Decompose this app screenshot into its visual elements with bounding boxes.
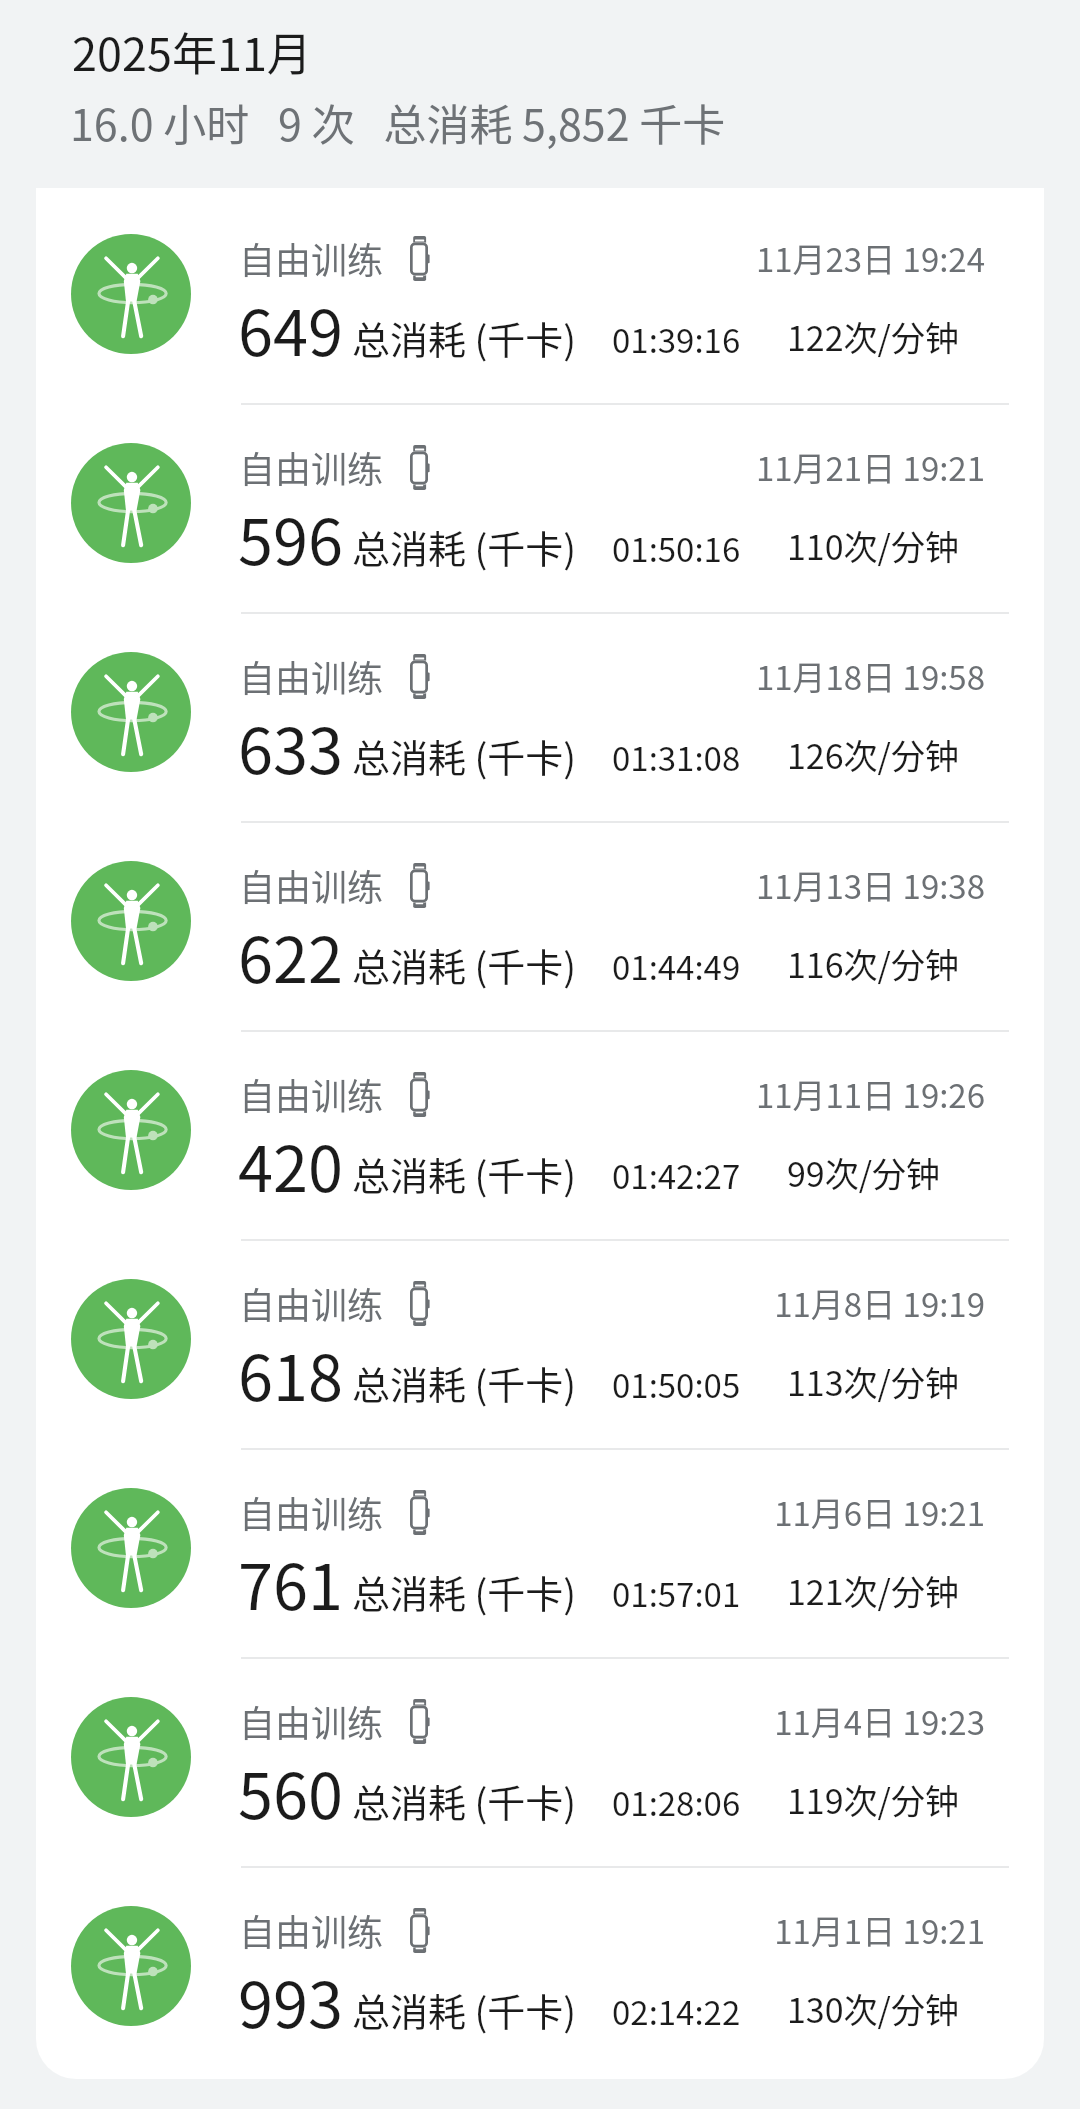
staticText: 01:50:16	[612, 524, 741, 572]
staticText: 总消耗 (千卡)	[352, 1773, 577, 1828]
staticText: 618	[238, 1328, 343, 1419]
staticText: 11月11日 19:26	[604, 1070, 985, 1118]
staticText: 560	[238, 1746, 343, 1837]
staticText: 01:28:06	[612, 1778, 741, 1826]
staticText: 126次/分钟	[787, 730, 959, 779]
staticText: 总消耗 (千卡)	[352, 1564, 577, 1619]
button[interactable]: 自由训练	[36, 606, 1044, 815]
staticText: 02:14:22	[612, 1987, 741, 2035]
staticText: 11月6日 19:21	[604, 1488, 985, 1536]
staticText: 01:31:08	[612, 733, 741, 781]
staticText: 自由训练	[239, 859, 384, 911]
staticText: 总消耗 (千卡)	[352, 1146, 577, 1201]
staticText: 11月23日 19:24	[604, 234, 985, 282]
staticText: 761	[238, 1537, 343, 1628]
staticText: 总消耗 (千卡)	[352, 728, 577, 783]
staticText: 总消耗 (千卡)	[352, 1355, 577, 1410]
staticText: 993	[238, 1955, 343, 2046]
staticText: 01:57:01	[612, 1569, 741, 1617]
staticText: 11月21日 19:21	[604, 443, 985, 491]
staticText: 总消耗 (千卡)	[352, 519, 577, 574]
staticText: 自由训练	[239, 232, 384, 284]
other: Wearable device	[410, 1699, 431, 1745]
button[interactable]: 自由训练	[36, 1442, 1044, 1651]
staticText: 596	[238, 492, 343, 583]
staticText: 633	[238, 701, 343, 792]
staticText: 自由训练	[239, 1904, 384, 1956]
staticText: 自由训练	[239, 1068, 384, 1120]
staticText: 2025年11月	[72, 19, 312, 84]
staticText: 11月8日 19:19	[604, 1279, 985, 1327]
button[interactable]: 自由训练	[36, 1860, 1044, 2069]
other: Wearable device	[410, 1490, 431, 1536]
other: Wearable device	[410, 1281, 431, 1327]
staticText: 总消耗 (千卡)	[352, 1982, 577, 2037]
other: Wearable device	[410, 236, 431, 282]
button[interactable]: 自由训练	[36, 397, 1044, 606]
staticText: 总消耗 (千卡)	[352, 937, 577, 992]
staticText: 11月4日 19:23	[604, 1697, 985, 1745]
staticText: 11月13日 19:38	[604, 861, 985, 909]
staticText: 11月1日 19:21	[604, 1906, 985, 1954]
staticText: 自由训练	[239, 1277, 384, 1329]
other: Wearable device	[410, 1908, 431, 1954]
other: Wearable device	[410, 863, 431, 909]
other: Wearable device	[410, 654, 431, 700]
staticText: 119次/分钟	[787, 1775, 959, 1824]
button[interactable]: 自由训练	[36, 1651, 1044, 1860]
staticText: 130次/分钟	[787, 1984, 959, 2033]
staticText: 01:39:16	[612, 315, 741, 363]
staticText: 11月18日 19:58	[604, 652, 985, 700]
staticText: 622	[238, 910, 343, 1001]
staticText: 116次/分钟	[787, 939, 959, 988]
staticText: 113次/分钟	[787, 1357, 959, 1406]
staticText: 01:44:49	[612, 942, 741, 990]
button[interactable]: 自由训练	[36, 1024, 1044, 1233]
staticText: 自由训练	[239, 1695, 384, 1747]
button[interactable]: 自由训练	[36, 188, 1044, 397]
staticText: 自由训练	[239, 650, 384, 702]
staticText: 总消耗 (千卡)	[352, 310, 577, 365]
button[interactable]: 自由训练	[36, 815, 1044, 1024]
staticText: 121次/分钟	[787, 1566, 959, 1615]
staticText: 420	[238, 1119, 343, 1210]
staticText: 01:42:27	[612, 1151, 741, 1199]
staticText: 01:50:05	[612, 1360, 741, 1408]
staticText: 自由训练	[239, 441, 384, 493]
staticText: 649	[238, 283, 343, 374]
staticText: 110次/分钟	[787, 521, 959, 570]
staticText: 99次/分钟	[787, 1148, 941, 1197]
staticText: 自由训练	[239, 1486, 384, 1538]
other: Wearable device	[410, 445, 431, 491]
button[interactable]: 自由训练	[36, 1233, 1044, 1442]
other: Wearable device	[410, 1072, 431, 1118]
staticText: 16.0 小时 9 次 总消耗 5,852 千卡	[70, 91, 726, 153]
staticText: 122次/分钟	[787, 312, 959, 361]
